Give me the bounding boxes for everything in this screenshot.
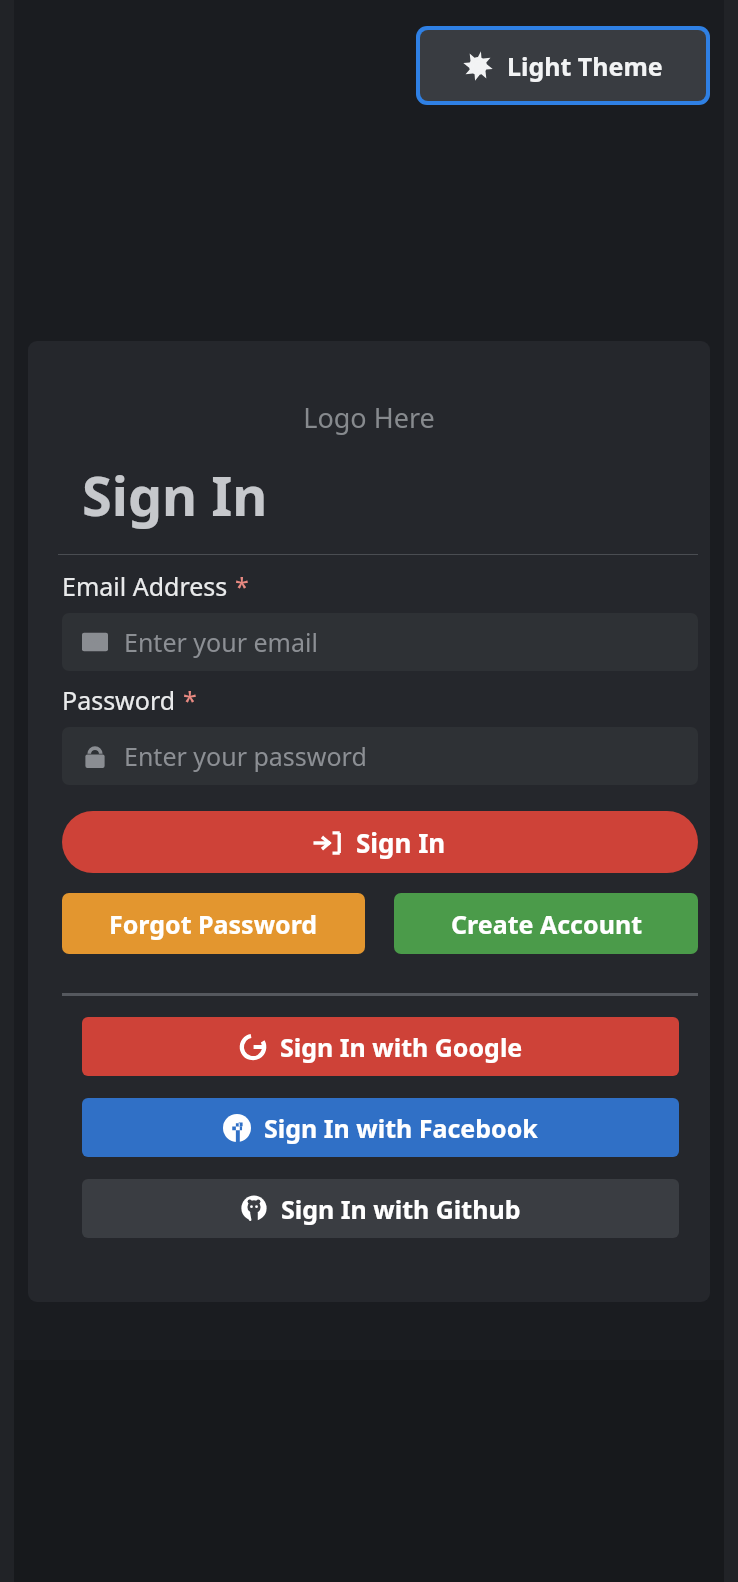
staticText: Enter your email [124, 625, 318, 659]
button[interactable]: Sign In with Github [82, 1179, 679, 1238]
staticText: * [183, 683, 197, 717]
staticText: Forgot Password [109, 907, 318, 941]
button[interactable]: Enter your email [62, 613, 698, 671]
staticText: Email Address [62, 569, 228, 603]
staticText: Logo Here [28, 399, 710, 436]
button[interactable]: Forgot Password [62, 893, 365, 954]
staticText: * [235, 569, 249, 603]
staticText: Sign In [82, 458, 268, 532]
staticText: Create Account [451, 907, 642, 941]
button[interactable]: Enter your password [62, 727, 698, 785]
staticText: Sign In with Github [281, 1192, 521, 1226]
button[interactable]: Sign In [62, 811, 698, 873]
staticText: Sign In with Google [280, 1030, 523, 1064]
button[interactable]: Light Theme [420, 30, 706, 101]
staticText: Sign In with Facebook [264, 1111, 538, 1145]
staticText: Enter your password [124, 739, 367, 773]
staticText: Light Theme [507, 49, 663, 83]
button[interactable]: Sign In with Google [82, 1017, 679, 1076]
staticText: Password [62, 683, 176, 717]
staticText: Sign In [356, 825, 446, 860]
button[interactable]: Create Account [394, 893, 698, 954]
button[interactable]: Sign In with Facebook [82, 1098, 679, 1157]
